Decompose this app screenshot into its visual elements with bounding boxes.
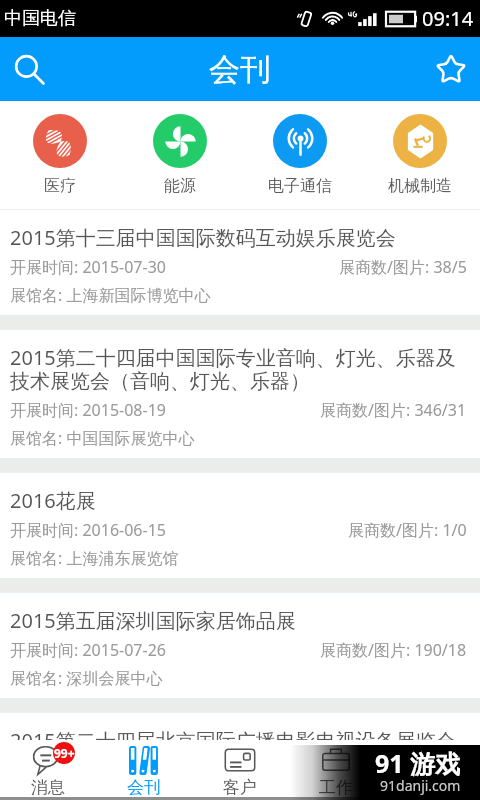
- button[interactable]: Favorite: [422, 37, 480, 101]
- staticText: 能源: [164, 176, 196, 196]
- staticText: 客户: [223, 777, 257, 797]
- staticText: 展商数/图片: 346/31: [320, 399, 467, 421]
- button[interactable]: 工作: [288, 740, 384, 797]
- staticText: 会刊: [209, 50, 271, 89]
- staticText: 开展时间: 2015-07-30: [10, 256, 166, 278]
- staticText: 2015第二十四届中国国际专业音响、灯光、乐器及技术展览会（音响、灯光、乐器）: [10, 344, 467, 394]
- button[interactable]: 电子通信: [240, 101, 360, 196]
- button[interactable]: 能源: [120, 101, 240, 196]
- button[interactable]: Search: [0, 37, 58, 101]
- staticText: 99+: [54, 745, 75, 761]
- button[interactable]: 我的: [384, 740, 480, 797]
- staticText: 91danji.com: [380, 776, 461, 795]
- staticText: 展商数/图片: 190/18: [320, 639, 467, 661]
- button[interactable]: 2015第二十四届中国国际专业音响、灯光、乐器及技术展览会（音响、灯光、乐器）: [0, 330, 480, 458]
- button[interactable]: 机械制造: [360, 101, 480, 196]
- staticText: 展商数/图片: 1/0: [348, 519, 467, 541]
- button[interactable]: 99+: [0, 740, 96, 797]
- staticText: 机械制造: [388, 176, 452, 196]
- staticText: 我的: [415, 777, 449, 797]
- staticText: 展馆名: 深圳会展中心: [10, 667, 163, 689]
- staticText: 医疗: [44, 176, 76, 196]
- staticText: 展商数/图片: 38/5: [339, 256, 467, 278]
- staticText: 2016花展: [10, 487, 96, 514]
- staticText: 展馆名: 上海新国际博览中心: [10, 284, 211, 306]
- staticText: 2015第二十四届北京国际广播电影电视设备展览会: [10, 727, 456, 754]
- staticText: 展馆名: 中国国际展览中心: [10, 427, 195, 449]
- staticText: 展馆名: 上海浦东展览馆: [10, 547, 179, 569]
- button[interactable]: 医疗: [0, 101, 120, 196]
- staticText: 开展时间: 2016-06-15: [10, 519, 166, 541]
- staticText: 电子通信: [268, 176, 332, 196]
- staticText: 消息: [31, 777, 65, 797]
- staticText: 09:14: [422, 5, 474, 32]
- staticText: 91 游戏: [375, 746, 461, 780]
- staticText: 会刊: [127, 777, 161, 797]
- staticText: 中国电信: [4, 7, 76, 30]
- button[interactable]: 2016花展: [0, 473, 480, 578]
- button[interactable]: 2015第五届深圳国际家居饰品展: [0, 593, 480, 698]
- staticText: 2015第五届深圳国际家居饰品展: [10, 607, 296, 634]
- staticText: 工作: [319, 777, 353, 797]
- button[interactable]: 2015第十三届中国国际数码互动娱乐展览会: [0, 210, 480, 315]
- button[interactable]: 客户: [192, 740, 288, 797]
- staticText: 开展时间: 2015-08-19: [10, 399, 166, 421]
- staticText: 2015第十三届中国国际数码互动娱乐展览会: [10, 224, 396, 251]
- staticText: 开展时间: 2015-07-26: [10, 639, 166, 661]
- button[interactable]: 会刊: [96, 740, 192, 797]
